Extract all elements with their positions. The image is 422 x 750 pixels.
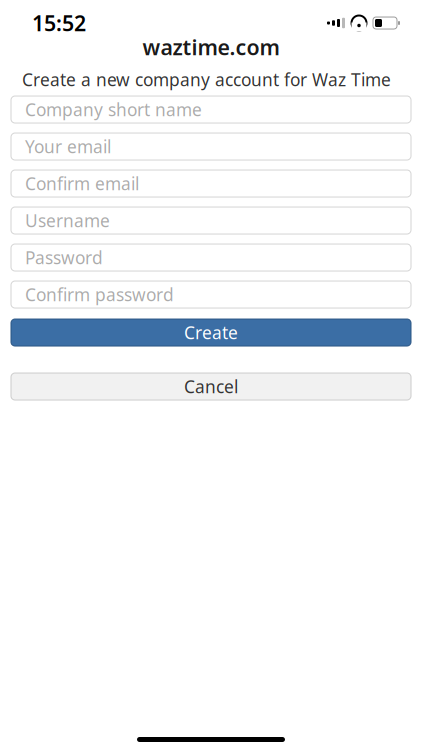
staticText: Company short name <box>25 98 202 121</box>
staticText: Confirm email <box>25 172 139 195</box>
staticText: Create a new company account for Waz Tim… <box>22 68 391 91</box>
staticText: waztime.com <box>142 33 279 61</box>
staticText: Confirm password <box>25 283 174 306</box>
staticText: Username <box>25 209 110 232</box>
staticText: 15:52 <box>32 9 86 37</box>
button[interactable]: Cancel <box>11 373 411 400</box>
staticText: Your email <box>25 135 111 158</box>
button[interactable]: Create <box>11 319 411 346</box>
staticText: Cancel <box>184 375 238 398</box>
staticText: Create <box>184 321 238 344</box>
staticText: Password <box>25 246 103 269</box>
